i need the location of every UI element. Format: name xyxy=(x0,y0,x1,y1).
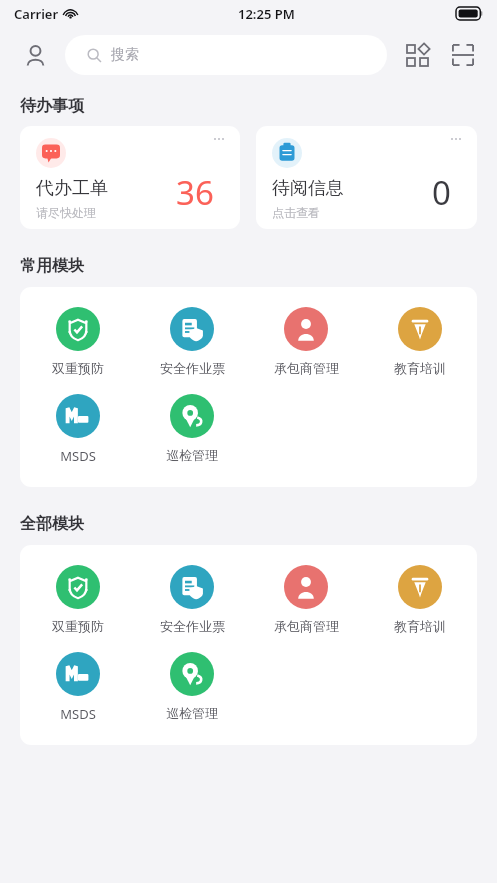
button[interactable]: 教育培训 xyxy=(363,565,477,634)
staticText: 请尽快处理 xyxy=(36,205,96,220)
button[interactable]: 巡检管理 xyxy=(135,652,249,721)
staticText: 全部模块 xyxy=(20,514,84,534)
staticText: 巡检管理 xyxy=(166,705,218,721)
button[interactable]: 双重预防 xyxy=(20,565,135,634)
staticText: 承包商管理 xyxy=(274,618,339,634)
button[interactable]: 双重预防 xyxy=(20,307,135,376)
button[interactable]: 代办工单 xyxy=(20,126,240,229)
button[interactable]: 安全作业票 xyxy=(135,307,249,376)
staticText: MSDS xyxy=(60,447,96,465)
staticText: ··· xyxy=(213,128,226,148)
button[interactable]: Profile xyxy=(18,38,52,72)
staticText: 0 xyxy=(432,170,451,215)
button[interactable]: 巡检管理 xyxy=(135,394,249,463)
staticText: MSDS xyxy=(60,705,96,723)
button[interactable]: Apps xyxy=(401,39,433,71)
button[interactable]: 承包商管理 xyxy=(249,565,363,634)
button[interactable]: 搜索 xyxy=(65,35,387,75)
button[interactable]: 待阅信息 xyxy=(256,126,477,229)
button[interactable]: MSDS xyxy=(20,652,135,723)
staticText: 承包商管理 xyxy=(274,360,339,376)
staticText: 待办事项 xyxy=(20,96,84,116)
staticText: 安全作业票 xyxy=(160,360,225,376)
staticText: 12:25 PM xyxy=(238,5,295,23)
staticText: 双重预防 xyxy=(52,360,104,376)
button[interactable]: Scan xyxy=(447,39,479,71)
staticText: Carrier xyxy=(14,5,59,23)
staticText: 常用模块 xyxy=(20,256,84,276)
staticText: 待阅信息 xyxy=(272,177,344,200)
staticText: 搜索 xyxy=(111,46,139,64)
staticText: ··· xyxy=(450,128,463,148)
staticText: 教育培训 xyxy=(394,360,446,376)
staticText: 代办工单 xyxy=(36,177,108,200)
staticText: 巡检管理 xyxy=(166,447,218,463)
staticText: 安全作业票 xyxy=(160,618,225,634)
staticText: 36 xyxy=(176,170,214,215)
button[interactable]: 安全作业票 xyxy=(135,565,249,634)
staticText: 教育培训 xyxy=(394,618,446,634)
button[interactable]: MSDS xyxy=(20,394,135,465)
button[interactable]: 教育培训 xyxy=(363,307,477,376)
staticText: 双重预防 xyxy=(52,618,104,634)
button[interactable]: 承包商管理 xyxy=(249,307,363,376)
staticText: 点击查看 xyxy=(272,205,320,220)
